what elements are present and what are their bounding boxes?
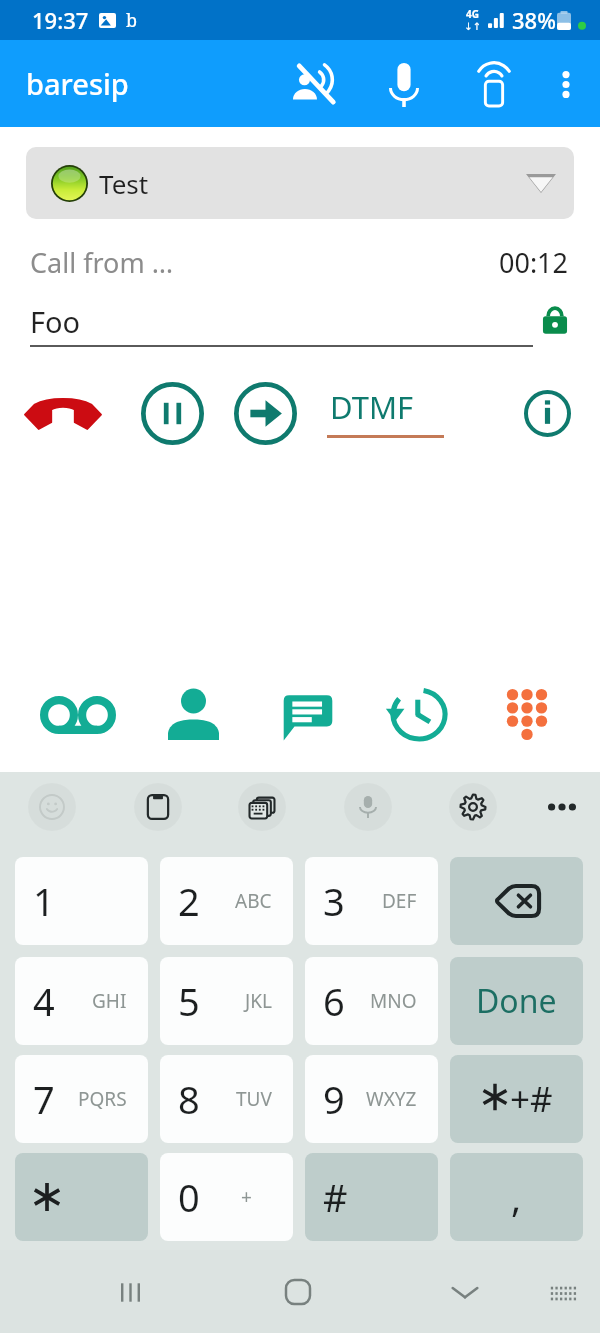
- button[interactable]: Transfer: [231, 379, 299, 447]
- staticText: 9: [323, 1073, 345, 1125]
- staticText: 5: [178, 975, 200, 1027]
- button[interactable]: Emoji: [28, 783, 76, 831]
- button[interactable]: More: [538, 783, 586, 831]
- staticText: 3: [323, 875, 345, 927]
- staticText: 19:37: [32, 5, 89, 35]
- button[interactable]: DTMF: [327, 386, 444, 438]
- button[interactable]: Settings: [449, 783, 497, 831]
- staticText: TUV: [236, 1086, 272, 1112]
- button[interactable]: 1: [15, 857, 148, 945]
- button[interactable]: Voice input: [344, 783, 392, 831]
- staticText: MNO: [370, 988, 417, 1014]
- button[interactable]: Voicemail: [33, 670, 123, 760]
- staticText: WXYZ: [366, 1086, 417, 1112]
- other: Backspace: [493, 884, 541, 918]
- staticText: ,: [511, 1171, 522, 1223]
- button[interactable]: 8: [160, 1055, 293, 1143]
- button[interactable]: Recents: [96, 1258, 164, 1326]
- staticText: DEF: [382, 888, 417, 914]
- staticText: Foo: [30, 302, 81, 341]
- staticText: Call from …: [30, 244, 174, 281]
- staticText: 00:12: [499, 244, 569, 281]
- staticText: PQRS: [78, 1086, 127, 1112]
- staticText: 2: [178, 875, 200, 927]
- button[interactable]: Contacts: [148, 669, 238, 759]
- button[interactable]: Call info: [513, 379, 581, 447]
- button[interactable]: 2: [160, 857, 293, 945]
- staticText: #: [323, 1171, 348, 1223]
- button[interactable]: 6: [305, 957, 438, 1045]
- button[interactable]: 5: [160, 957, 293, 1045]
- button[interactable]: Test: [26, 147, 574, 219]
- button[interactable]: Microphone: [368, 48, 440, 120]
- button[interactable]: Messages: [263, 670, 353, 760]
- button[interactable]: Dialpad: [482, 669, 572, 759]
- button[interactable]: Keyboard modes: [238, 783, 286, 831]
- staticText: 6: [323, 975, 345, 1027]
- button[interactable]: Keyboard layout: [529, 1258, 597, 1326]
- button[interactable]: 7: [15, 1055, 148, 1143]
- button[interactable]: History: [370, 669, 460, 759]
- button[interactable]: Clipboard: [134, 783, 182, 831]
- staticText: 4G: [466, 7, 479, 21]
- button[interactable]: 4: [15, 957, 148, 1045]
- staticText: +: [241, 1184, 252, 1210]
- staticText: Test: [99, 166, 149, 201]
- button[interactable]: Speaker: [458, 48, 530, 120]
- staticText: JKL: [245, 988, 272, 1014]
- staticText: 1: [33, 875, 55, 927]
- other: Secure call: [541, 305, 569, 337]
- button[interactable]: Speaker off: [280, 48, 352, 120]
- button[interactable]: Hold: [138, 379, 206, 447]
- staticText: b: [126, 8, 138, 33]
- button[interactable]: 3: [305, 857, 438, 945]
- button[interactable]: 0: [160, 1153, 293, 1241]
- button[interactable]: Backspace: [450, 857, 583, 945]
- staticText: Done: [476, 979, 557, 1023]
- staticText: DTMF: [330, 386, 414, 428]
- button[interactable]: Done: [450, 957, 583, 1045]
- button[interactable]: #: [305, 1153, 438, 1241]
- button[interactable]: Hang up: [23, 380, 103, 448]
- button[interactable]: 9: [305, 1055, 438, 1143]
- staticText: +#: [510, 1075, 553, 1123]
- staticText: 38%: [512, 5, 556, 35]
- staticText: 8: [178, 1073, 200, 1125]
- button[interactable]: ,: [450, 1153, 583, 1241]
- staticText: 0: [178, 1171, 200, 1223]
- button[interactable]: Star: [15, 1153, 148, 1241]
- button[interactable]: More options: [537, 55, 595, 113]
- button[interactable]: Home: [264, 1258, 332, 1326]
- staticText: GHI: [92, 988, 127, 1014]
- button[interactable]: +#: [450, 1055, 583, 1143]
- staticText: 7: [33, 1073, 55, 1125]
- staticText: 4: [33, 975, 55, 1027]
- button[interactable]: Hide keyboard: [431, 1258, 499, 1326]
- other: Star: [31, 1181, 63, 1213]
- staticText: ABC: [235, 888, 272, 914]
- staticText: ↓↑: [464, 21, 481, 33]
- staticText: baresip: [26, 64, 129, 103]
